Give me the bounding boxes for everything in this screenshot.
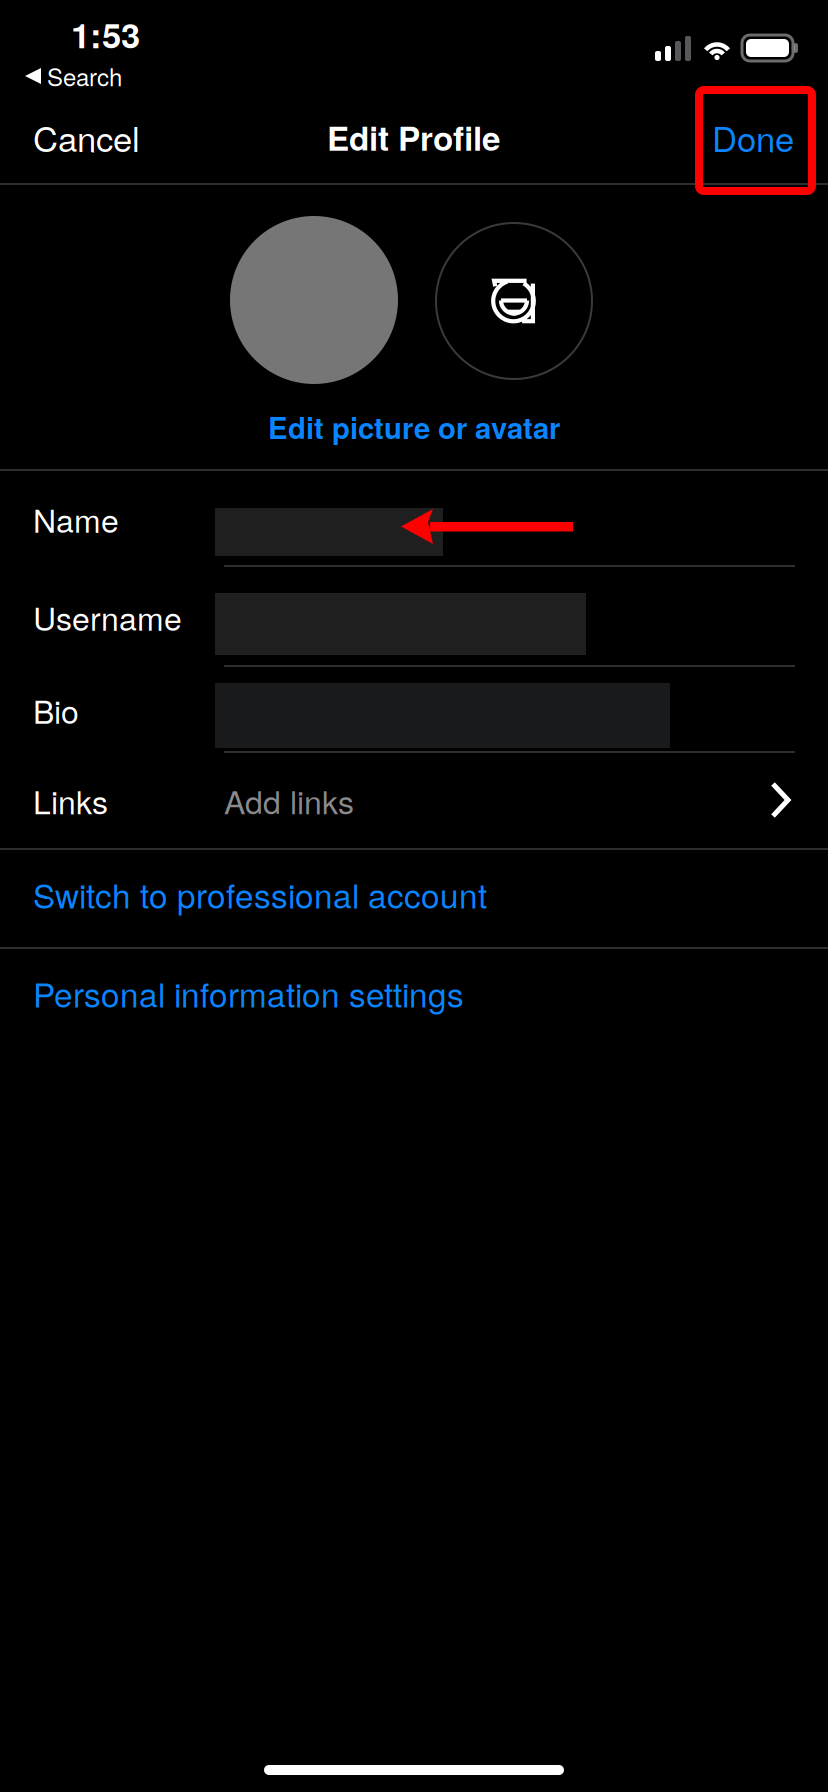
- button[interactable]: Links: [0, 753, 828, 848]
- button[interactable]: Profile photo: [0, 185, 398, 384]
- button[interactable]: Name: [0, 471, 828, 567]
- staticText: Edit picture or avatar: [268, 406, 560, 448]
- button[interactable]: Personal information settings: [0, 949, 828, 1046]
- staticText: Add links: [224, 778, 354, 823]
- staticText: Switch to professional account: [33, 870, 487, 918]
- staticText: Search: [47, 59, 122, 93]
- button[interactable]: Username: [0, 567, 828, 667]
- button[interactable]: Bio: [0, 667, 828, 753]
- staticText: Personal information settings: [33, 969, 464, 1017]
- button[interactable]: Done: [0, 95, 806, 179]
- staticText: Done: [712, 112, 794, 162]
- button[interactable]: Edit picture or avatar: [0, 185, 828, 453]
- button[interactable]: Switch to professional account: [0, 850, 828, 947]
- button[interactable]: Create avatar: [0, 185, 593, 380]
- staticText: Username: [33, 594, 182, 640]
- staticText: Bio: [33, 687, 79, 733]
- staticText: Edit Profile: [327, 113, 501, 161]
- staticText: Cancel: [33, 112, 140, 162]
- staticText: Name: [33, 496, 119, 542]
- button[interactable]: Back to Search: [0, 61, 245, 91]
- staticText: 1:53: [71, 9, 140, 59]
- button[interactable]: Cancel: [0, 95, 203, 179]
- staticText: Links: [33, 778, 108, 823]
